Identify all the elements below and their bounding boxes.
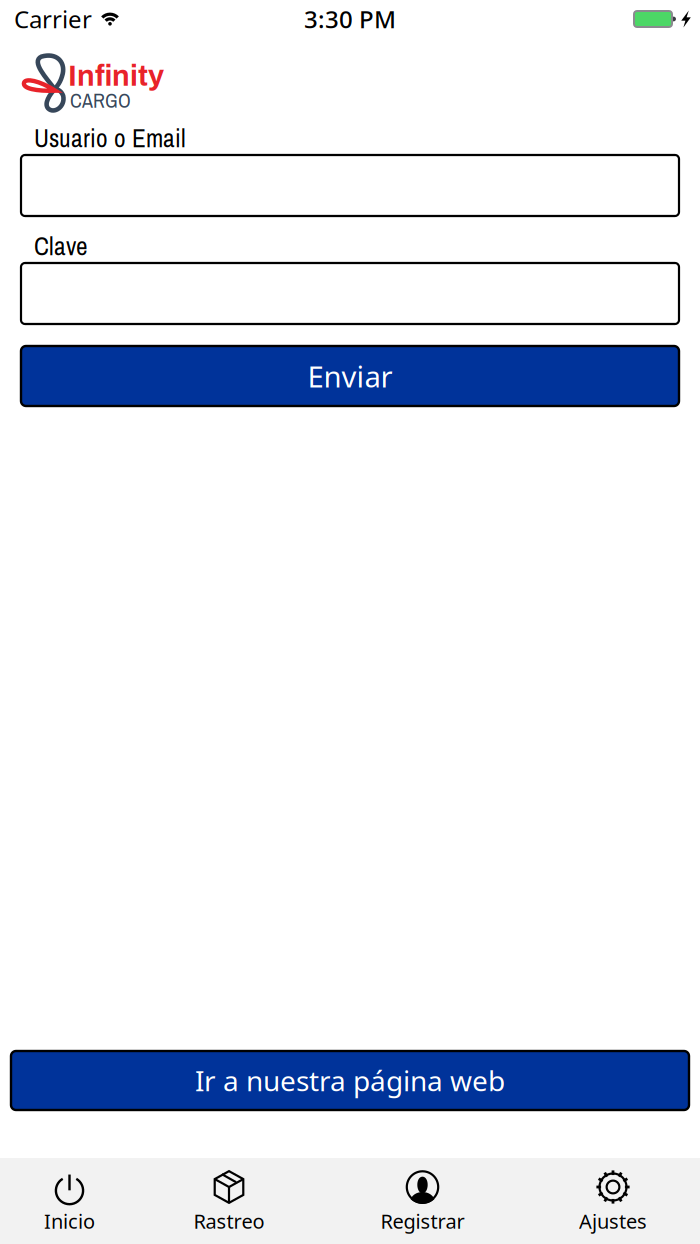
staticText: Registrar	[380, 1208, 464, 1234]
staticText: Usuario o Email	[34, 121, 186, 155]
staticText: CARGO	[70, 87, 131, 114]
button[interactable]: Ir a nuestra página web	[11, 1051, 689, 1110]
staticText: Rastreo	[193, 1208, 264, 1234]
staticText: Inicio	[44, 1208, 95, 1234]
staticText: 3:30 PM	[304, 3, 396, 35]
button[interactable]: Rastreo	[139, 1158, 319, 1244]
staticText: Carrier	[14, 3, 92, 35]
button[interactable]: Registrar	[319, 1158, 526, 1244]
staticText: Infinity	[68, 60, 164, 92]
button[interactable]: Ajustes	[526, 1158, 700, 1244]
staticText: Ir a nuestra página web	[195, 1062, 505, 1099]
staticText: Ajustes	[579, 1208, 647, 1234]
staticText: Clave	[34, 229, 88, 263]
button[interactable]: Inicio	[0, 1158, 139, 1244]
button[interactable]: Enviar	[21, 346, 679, 406]
staticText: Enviar	[307, 356, 392, 395]
